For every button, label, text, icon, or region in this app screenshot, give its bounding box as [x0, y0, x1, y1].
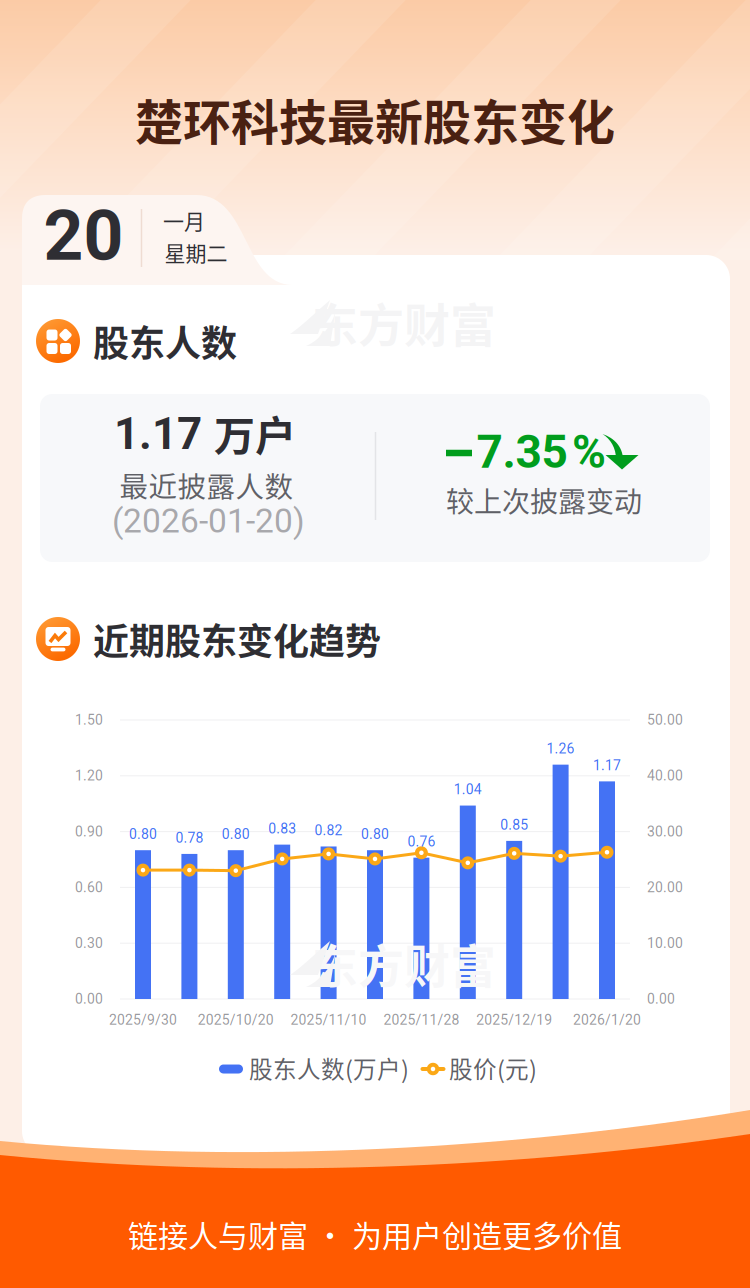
staticText: 近期股东变化趋势: [93, 613, 381, 665]
staticText: 2025/10/20: [198, 1012, 274, 1028]
staticText: 1.26: [547, 740, 575, 757]
staticText: 一月: [163, 205, 205, 235]
staticText: 0.76: [407, 833, 435, 850]
staticText: 0.90: [75, 823, 103, 840]
staticText: 1.50: [75, 712, 103, 728]
staticText: 20.00: [647, 879, 683, 896]
staticText: 1.04: [454, 781, 482, 798]
staticText: 0.00: [75, 991, 103, 1007]
staticText: 2025/11/10: [291, 1012, 367, 1028]
staticText: %: [572, 425, 606, 479]
staticText: 0.85: [500, 817, 528, 833]
staticText: 0.80: [222, 826, 250, 842]
staticText: 20: [43, 195, 123, 277]
staticText: 0.80: [129, 826, 157, 842]
staticText: 2025/11/28: [383, 1012, 459, 1028]
staticText: 1.20: [75, 768, 103, 784]
staticText: 0.80: [361, 826, 389, 842]
staticText: 链接人与财富 · 为用户创造更多价值: [128, 1212, 622, 1256]
staticText: 50.00: [647, 712, 683, 728]
staticText: 较上次披露变动: [446, 480, 642, 520]
staticText: 0.83: [268, 820, 296, 837]
staticText: 0.82: [315, 822, 343, 839]
staticText: 0.30: [75, 935, 103, 951]
staticText: 7.35: [476, 425, 567, 479]
staticText: 星期二: [164, 237, 227, 267]
staticText: 30.00: [647, 823, 683, 840]
staticText: 股价(元): [449, 1051, 537, 1085]
staticText: 东方财富: [312, 930, 496, 996]
staticText: 股东人数: [93, 315, 237, 367]
staticText: 2025/9/30: [109, 1012, 177, 1028]
staticText: 0.00: [647, 991, 675, 1007]
staticText: 2026/1/20: [573, 1012, 641, 1028]
staticText: 最近披露人数: [119, 464, 293, 506]
staticText: 1.17: [114, 408, 202, 460]
staticText: 0.78: [175, 830, 203, 846]
staticText: 东方财富: [312, 289, 496, 355]
staticText: (2026-01-20): [112, 501, 305, 541]
staticText: 楚环科技最新股东变化: [135, 84, 615, 154]
staticText: 1.17: [593, 757, 621, 774]
staticText: 40.00: [647, 768, 683, 784]
staticText: 万户: [214, 403, 296, 463]
staticText: 2025/12/19: [476, 1012, 552, 1028]
staticText: 股东人数(万户): [249, 1051, 409, 1085]
staticText: 10.00: [647, 935, 683, 951]
staticText: 0.60: [75, 879, 103, 896]
